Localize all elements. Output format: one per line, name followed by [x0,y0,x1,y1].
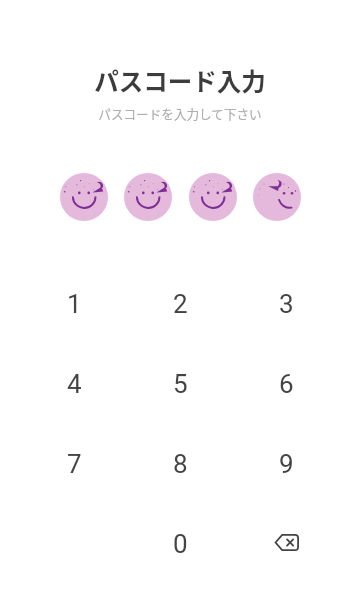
button[interactable]: 3 [233,264,339,344]
button[interactable]: 6 [233,344,339,424]
staticText: 5 [173,369,188,399]
button[interactable]: 1 [21,264,127,344]
staticText: 6 [279,369,294,399]
staticText: 3 [279,289,294,319]
button[interactable]: 0 [127,504,233,584]
button[interactable]: 5 [127,344,233,424]
staticText: パスコード入力 [94,63,266,98]
button[interactable]: 2 [127,264,233,344]
button[interactable]: 8 [127,424,233,504]
staticText: 1 [67,289,82,319]
button[interactable]: 9 [233,424,339,504]
staticText: 9 [279,449,294,479]
button[interactable]: Passcode digit [189,173,237,221]
staticText: 8 [173,449,188,479]
button[interactable]: Backspace [233,504,339,584]
button[interactable]: 4 [21,344,127,424]
button[interactable]: 7 [21,424,127,504]
staticText: 4 [67,369,82,399]
staticText: パスコードを入力して下さい [98,104,262,122]
staticText: 0 [173,529,188,559]
button[interactable]: Passcode digit [253,173,301,221]
staticText: 2 [173,289,188,319]
button[interactable]: Passcode digit [124,173,172,221]
button[interactable]: Passcode digit [60,173,108,221]
staticText: 7 [67,449,82,479]
